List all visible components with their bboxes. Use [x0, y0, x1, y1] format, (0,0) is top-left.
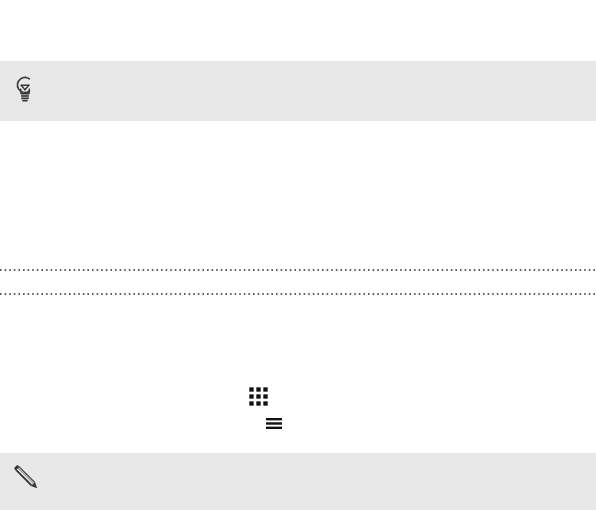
button[interactable]: All apps — [244, 382, 272, 410]
button[interactable]: Note — [0, 453, 596, 510]
button[interactable]: Tip — [0, 61, 596, 121]
button[interactable]: Menu — [262, 413, 286, 433]
button[interactable]: Note — [13, 464, 39, 490]
button[interactable]: Tip — [14, 74, 36, 106]
